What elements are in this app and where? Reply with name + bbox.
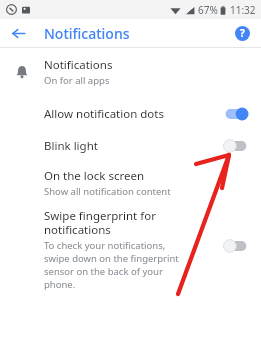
staticText: 11:32 (230, 3, 256, 17)
staticText: 67% (198, 3, 218, 17)
staticText: Show all notification content (44, 185, 171, 198)
staticText: Notifications (44, 57, 113, 73)
button[interactable]: Blink light (0, 130, 261, 162)
button[interactable]: On the lock screen (0, 166, 261, 200)
button[interactable]: Notifications (0, 54, 261, 90)
button[interactable]: Swipe fingerprint for notifications (0, 206, 261, 291)
button[interactable]: Help (232, 23, 252, 43)
button[interactable]: Back (7, 22, 29, 44)
staticText: Blink light (44, 138, 223, 154)
staticText: On the lock screen (44, 168, 145, 184)
staticText: On for all apps (44, 74, 110, 87)
staticText: Allow notification dots (44, 106, 223, 122)
staticText: Notifications (44, 24, 130, 43)
button[interactable]: Allow notification dots (0, 98, 261, 130)
staticText: ? (240, 26, 245, 40)
staticText: To check your notifications, swipe down … (44, 239, 179, 291)
staticText: Swipe fingerprint for notifications (44, 208, 156, 237)
